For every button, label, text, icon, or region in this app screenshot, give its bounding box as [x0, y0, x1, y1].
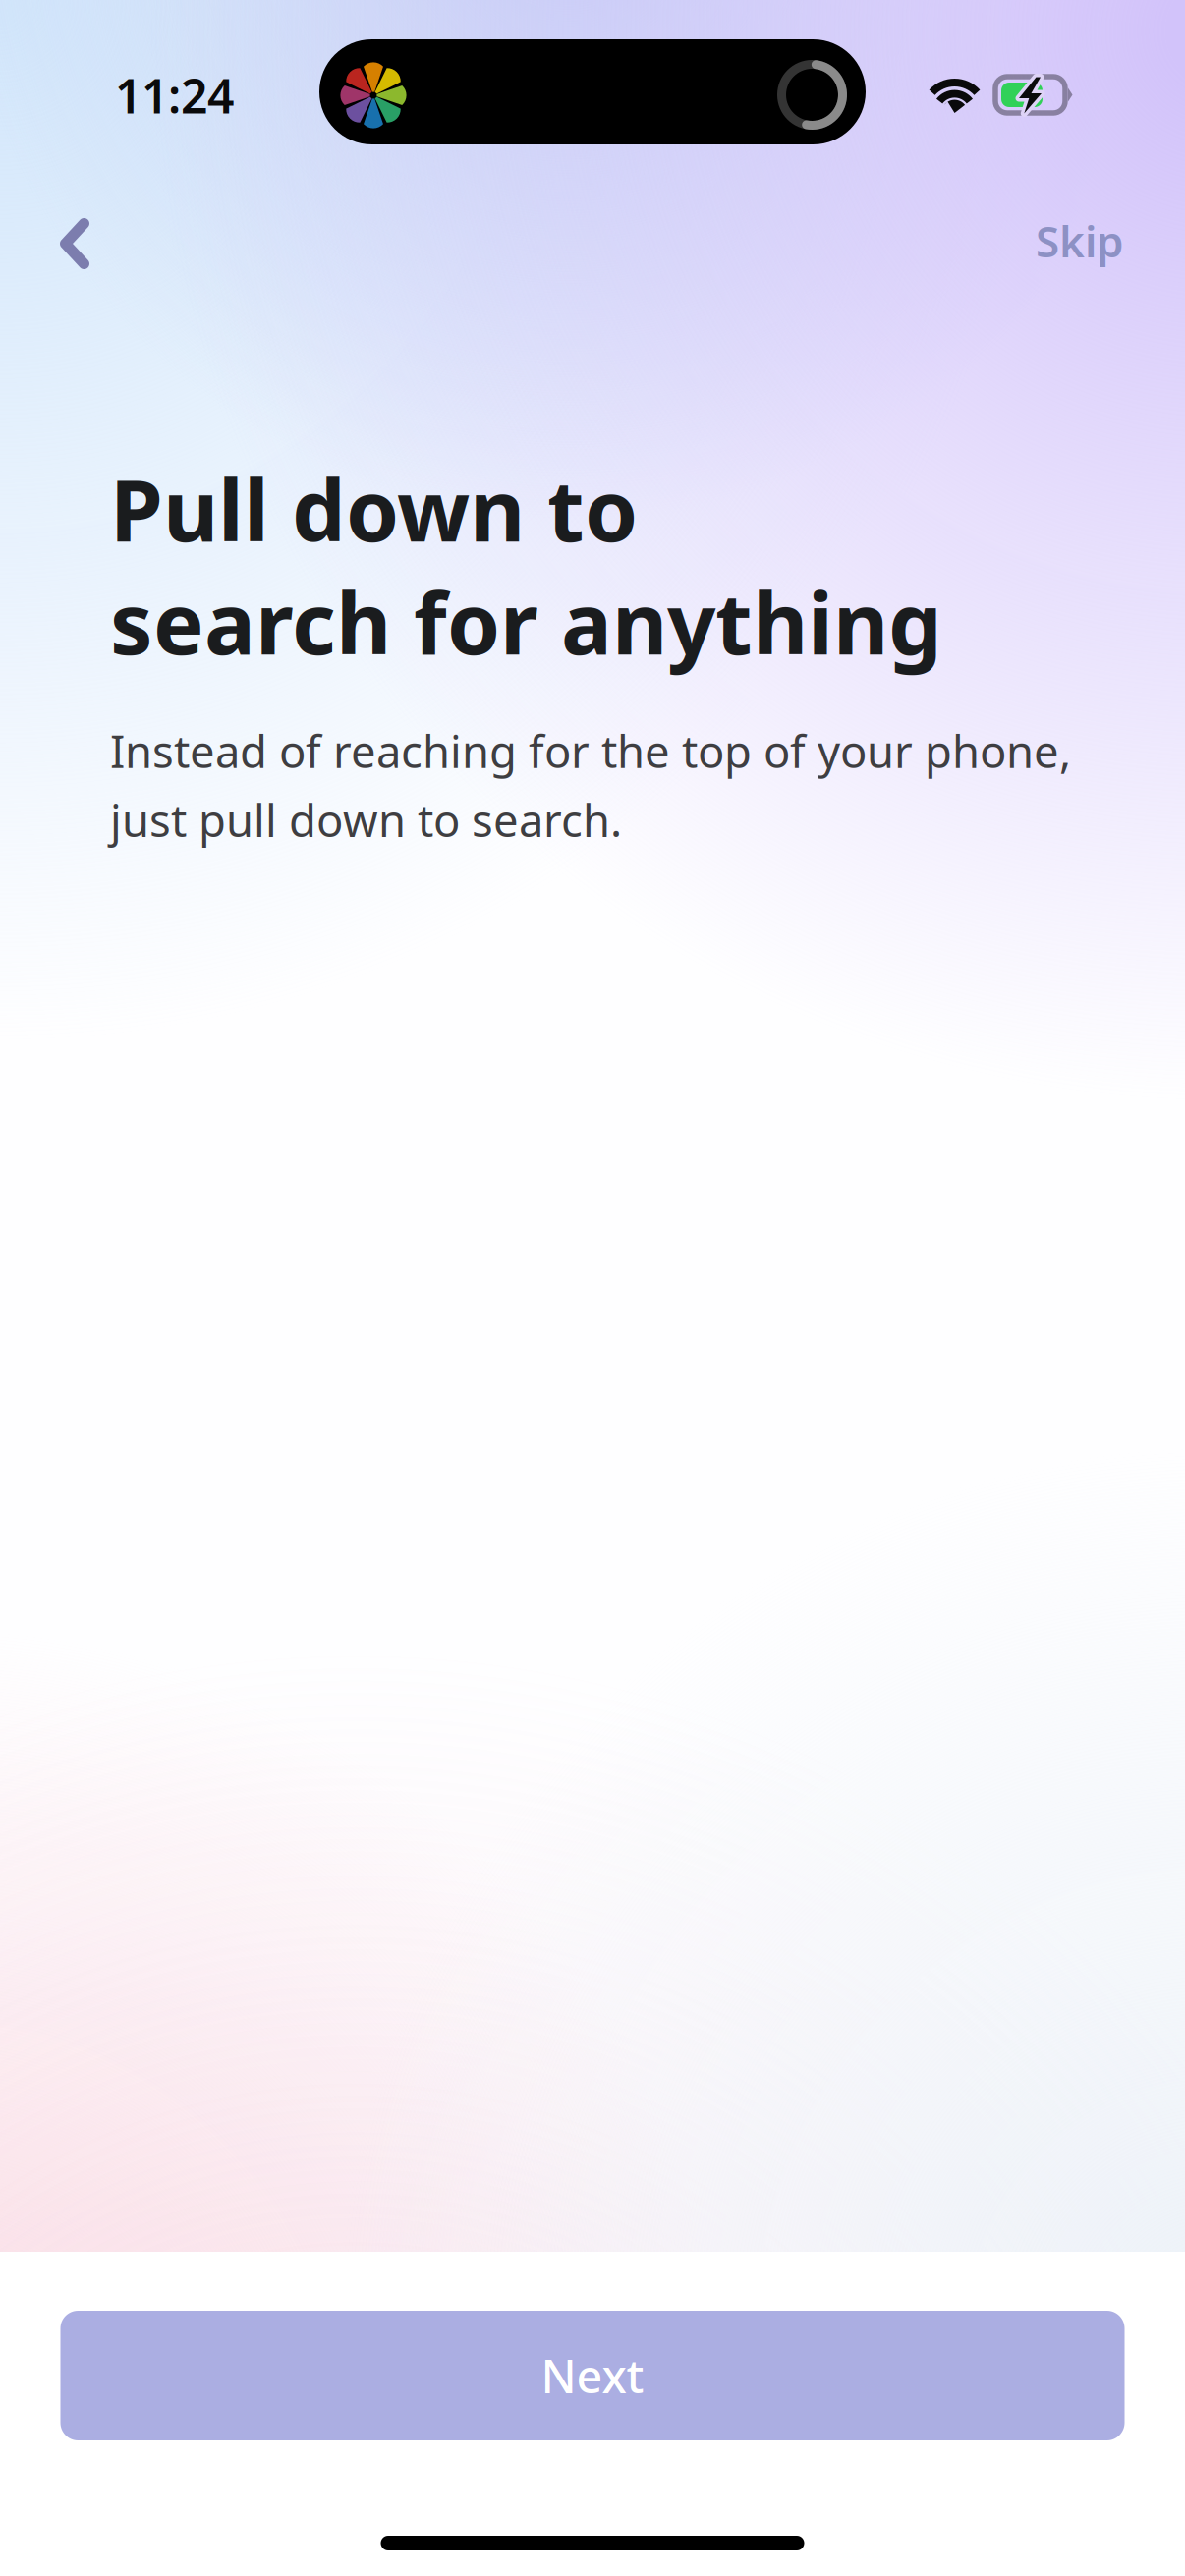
staticText: Next — [541, 2345, 644, 2406]
staticText: 11:24 — [115, 64, 234, 127]
button[interactable]: Skip — [1002, 184, 1185, 298]
button[interactable]: Back — [0, 184, 134, 308]
button[interactable]: Next — [60, 2311, 1125, 2440]
staticText: Instead of reaching for the top of your … — [110, 721, 1071, 849]
staticText: Pull down to search for anything — [110, 452, 942, 678]
staticText: Skip — [1036, 212, 1124, 269]
